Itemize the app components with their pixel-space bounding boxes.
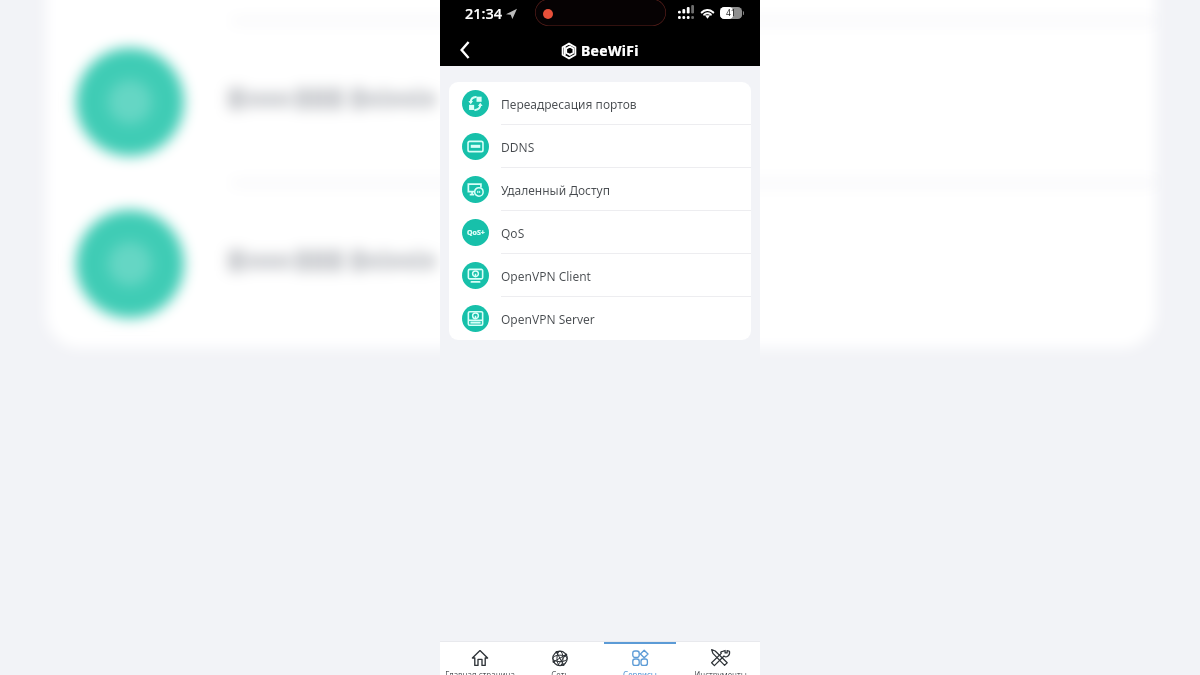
staticText: Сервисы (623, 669, 657, 675)
button[interactable]: Удаленный Доступ (449, 168, 751, 211)
button[interactable]: Back (451, 36, 479, 64)
button[interactable]: OpenVPN Server (449, 297, 751, 340)
staticText: DDNS (501, 139, 535, 155)
button[interactable]: Главная страница (440, 642, 520, 675)
staticText: Главная страница (445, 669, 515, 675)
button[interactable]: Переадресация портов (449, 82, 751, 125)
staticText: BeeWiFi (581, 41, 639, 60)
staticText: Инструменты (694, 669, 747, 675)
staticText: OpenVPN Client (501, 268, 591, 284)
button[interactable]: QoS+ (449, 211, 751, 254)
staticText: 21:34 (465, 3, 503, 23)
staticText: Переадресация портов (501, 96, 637, 112)
staticText: QoS+ (467, 228, 485, 238)
button[interactable]: DDNS (449, 125, 751, 168)
staticText: Сеть (551, 669, 569, 675)
button[interactable]: Сеть (520, 642, 600, 675)
staticText: Удаленный Доступ (501, 182, 610, 198)
staticText: QoS (501, 225, 525, 241)
staticText: 41 (726, 7, 736, 19)
staticText: OpenVPN Server (501, 311, 595, 327)
button[interactable]: OpenVPN Client (449, 254, 751, 297)
button[interactable]: Сервисы (600, 642, 680, 675)
button[interactable]: Инструменты (680, 642, 760, 675)
